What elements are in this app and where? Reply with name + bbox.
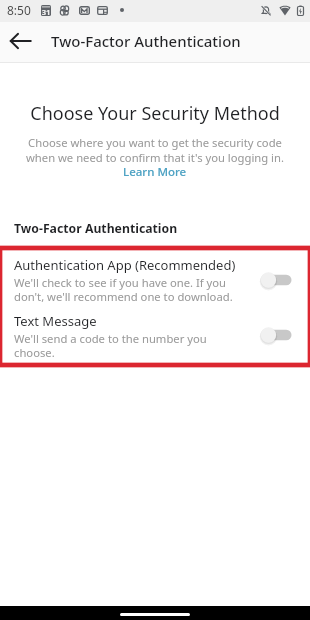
button[interactable]: Toggle off <box>254 267 300 293</box>
staticText: Learn More <box>123 164 187 180</box>
staticText: when we need to confirm that it's you lo… <box>0 150 310 165</box>
staticText: Two-Factor Authentication <box>14 220 178 237</box>
button[interactable]: Authentication App (Recommended) <box>0 252 310 295</box>
staticText: Authentication App (Recommended) <box>14 256 236 274</box>
staticText: We'll send a code to the number you <box>14 331 207 346</box>
staticText: choose. <box>14 345 55 360</box>
staticText: Text Message <box>14 312 97 330</box>
staticText: 8:50 <box>7 2 31 18</box>
button[interactable]: Toggle off <box>254 322 300 348</box>
staticText: Choose Your Security Method <box>0 101 310 126</box>
staticText: Choose where you want to get the securit… <box>0 135 310 150</box>
button[interactable]: Learn More <box>0 162 310 179</box>
button[interactable]: Text Message <box>0 308 310 351</box>
staticText: 31 <box>40 7 52 17</box>
button[interactable]: Back <box>5 26 36 57</box>
staticText: don't, we'll recommend one to download. <box>14 289 233 304</box>
staticText: Two-Factor Authentication <box>51 31 241 51</box>
staticText: We'll check to see if you have one. If y… <box>14 275 227 290</box>
